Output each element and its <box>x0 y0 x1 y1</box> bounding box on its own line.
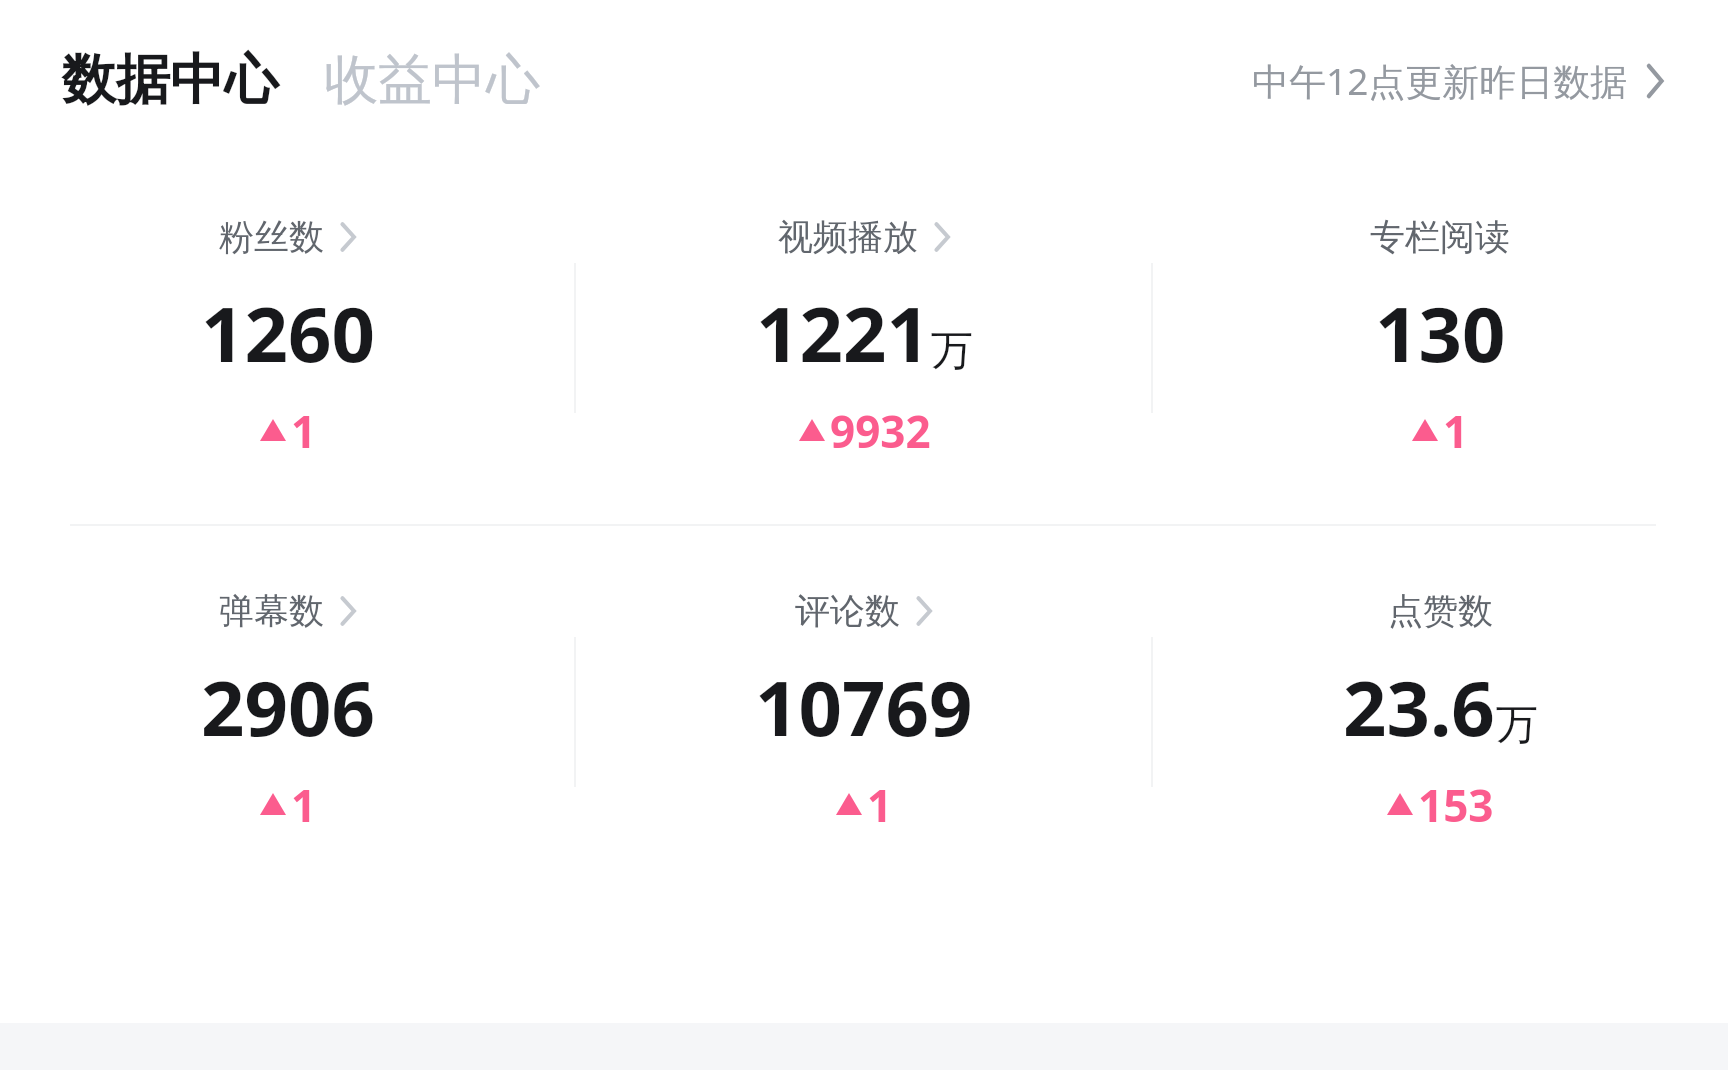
staticText: 1221 <box>756 281 930 385</box>
staticText: 视频播放 <box>778 215 918 259</box>
staticText: 粉丝数 <box>219 215 324 259</box>
button[interactable]: 评论数 <box>755 589 973 835</box>
staticText: 万 <box>931 325 973 378</box>
staticText: 万 <box>1496 699 1538 752</box>
staticText: 点赞数 <box>1388 589 1493 633</box>
staticText: 1 <box>1443 401 1469 461</box>
button[interactable]: 点赞数 <box>1343 589 1538 835</box>
staticText: 9932 <box>830 401 931 461</box>
other: 视频播放 <box>932 221 952 253</box>
other: 粉丝数 <box>338 221 358 253</box>
staticText: 1 <box>867 775 893 835</box>
staticText: 中午12点更新昨日数据 <box>1252 55 1628 106</box>
button[interactable]: 收益中心 <box>324 46 540 114</box>
staticText: 专栏阅读 <box>1370 215 1510 259</box>
staticText: 弹幕数 <box>219 589 324 633</box>
button[interactable]: 粉丝数 <box>201 215 375 461</box>
button[interactable]: 专栏阅读 <box>1370 215 1510 461</box>
staticText: 1 <box>291 401 317 461</box>
button[interactable]: 中午12点更新昨日数据 <box>1252 55 1666 106</box>
other: 弹幕数 <box>338 595 358 627</box>
staticText: 1 <box>291 775 317 835</box>
button[interactable]: 数据中心 <box>62 46 278 114</box>
staticText: 130 <box>1375 281 1506 385</box>
staticText: 2906 <box>201 655 375 759</box>
staticText: 收益中心 <box>324 46 540 114</box>
staticText: 23.6 <box>1343 655 1495 759</box>
staticText: 153 <box>1418 775 1494 835</box>
other: 评论数 <box>914 595 934 627</box>
staticText: 评论数 <box>795 589 900 633</box>
staticText: 1260 <box>201 281 375 385</box>
button[interactable]: 弹幕数 <box>201 589 375 835</box>
staticText: 10769 <box>755 655 973 759</box>
button[interactable]: 视频播放 <box>756 215 973 461</box>
other: 查看更多数据 <box>1644 62 1666 100</box>
staticText: 数据中心 <box>62 46 278 114</box>
